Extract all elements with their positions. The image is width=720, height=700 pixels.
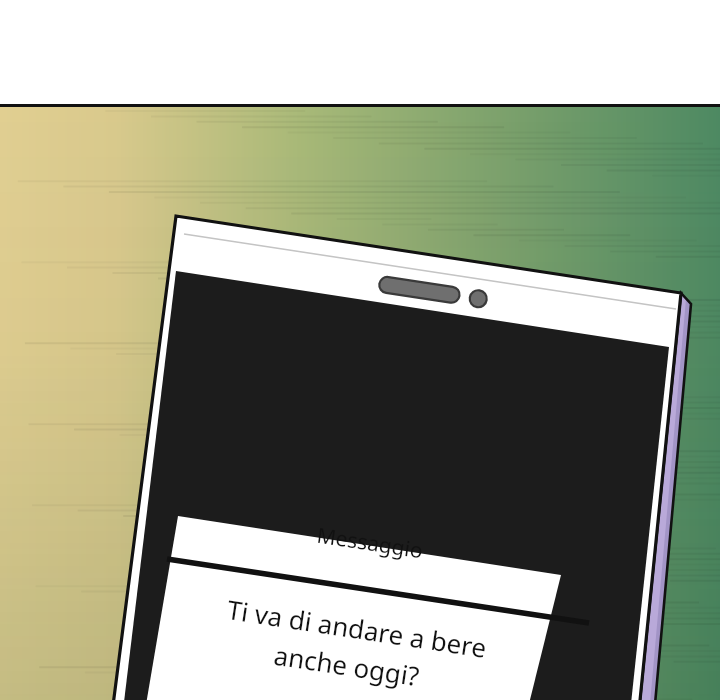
button[interactable]: Comic panel: smartphone displaying a mes…	[0, 0, 720, 700]
